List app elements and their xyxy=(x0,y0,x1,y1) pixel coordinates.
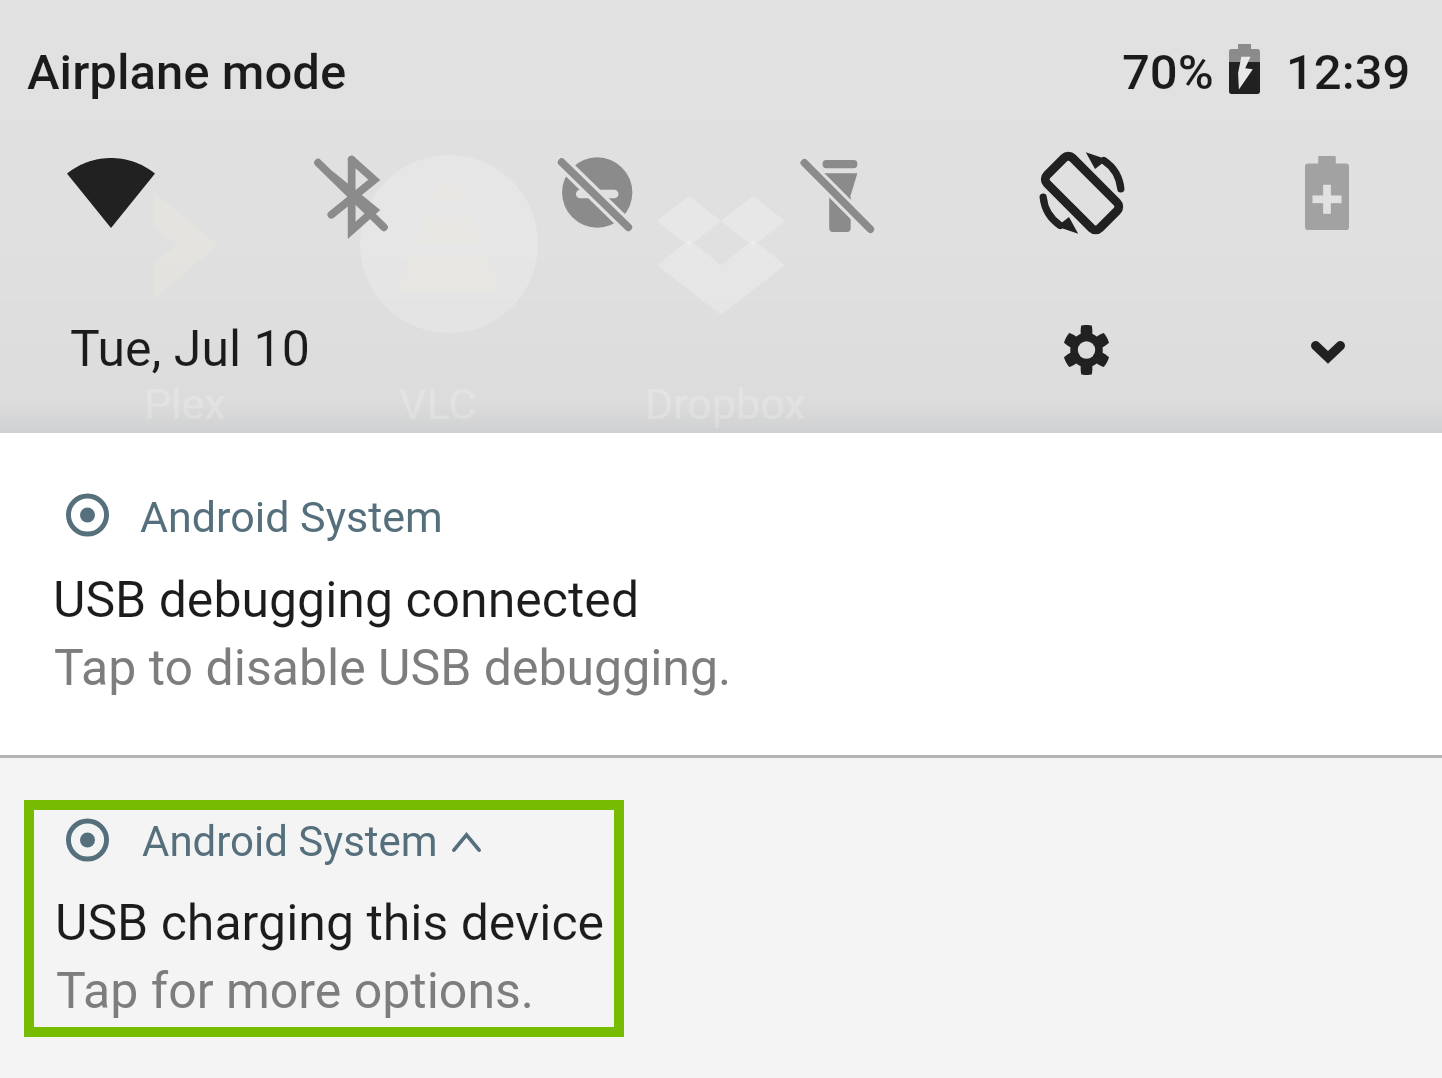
staticText: Android System xyxy=(140,492,443,542)
button[interactable]: Bluetooth off xyxy=(266,125,436,265)
staticText: 12:39 xyxy=(1286,44,1411,101)
button[interactable]: Android System xyxy=(24,800,624,1037)
staticText: Airplane mode xyxy=(27,44,347,101)
staticText: Tap to disable USB debugging. xyxy=(54,639,732,698)
button[interactable]: Collapse quick settings xyxy=(1268,291,1388,411)
staticText: Plex xyxy=(144,379,226,429)
button[interactable]: Do not disturb off xyxy=(510,124,680,264)
staticText: USB debugging connected xyxy=(53,571,640,630)
staticText: Tue, Jul 10 xyxy=(70,320,310,379)
button[interactable]: Flashlight off xyxy=(752,126,922,266)
staticText: VLC xyxy=(399,379,477,429)
button[interactable]: Auto rotate xyxy=(997,123,1167,263)
staticText: Android System xyxy=(142,817,438,866)
staticText: 70% xyxy=(1122,44,1214,101)
button[interactable]: Battery saver xyxy=(1242,123,1412,263)
button[interactable]: Wi-Fi xyxy=(26,123,196,263)
staticText: USB charging this device xyxy=(55,894,605,953)
staticText: Dropbox xyxy=(645,379,806,429)
button[interactable]: Settings xyxy=(1026,290,1146,410)
button[interactable]: Android System xyxy=(0,433,1442,755)
staticText: Tap for more options. xyxy=(56,962,534,1021)
